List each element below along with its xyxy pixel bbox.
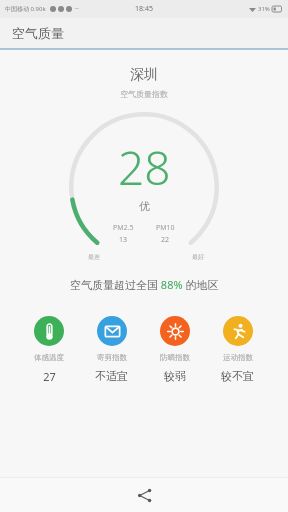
staticText: 27 (43, 369, 56, 384)
staticText: 最好 (192, 253, 204, 261)
staticText: 深圳 (130, 66, 158, 84)
staticText: ·· (75, 4, 79, 14)
staticText: 运动指数 (223, 353, 253, 362)
staticText: 防晒指数 (160, 353, 190, 362)
staticText: 寄剪指数 (97, 353, 127, 362)
staticText: 28 (118, 136, 171, 199)
button[interactable]: 寄剪指数 (91, 314, 132, 385)
button[interactable]: 运动指数 (217, 314, 258, 385)
staticText: 空气质量 (12, 25, 64, 41)
staticText: PM2.5 (113, 223, 134, 233)
staticText: 31% (258, 5, 270, 13)
staticText: 13 (119, 235, 128, 245)
staticText: 空气质量指数 (120, 89, 168, 99)
staticText: 优 (139, 199, 150, 213)
staticText: 18:45 (135, 4, 153, 14)
button[interactable]: 体感温度 (30, 314, 68, 386)
staticText: 较不宜 (221, 369, 254, 383)
button[interactable]: Share (127, 478, 161, 512)
staticText: 22 (161, 235, 170, 245)
staticText: 较弱 (164, 369, 186, 383)
staticText: 空气质量超过全国 88% 的地区 (70, 277, 219, 292)
staticText: 最差 (88, 253, 100, 261)
staticText: 中国移动 0.90k (5, 5, 46, 13)
staticText: 不适宜 (95, 369, 128, 383)
staticText: 体感温度 (34, 353, 64, 362)
button[interactable]: 防晒指数 (156, 314, 194, 385)
staticText: PM10 (156, 223, 175, 233)
